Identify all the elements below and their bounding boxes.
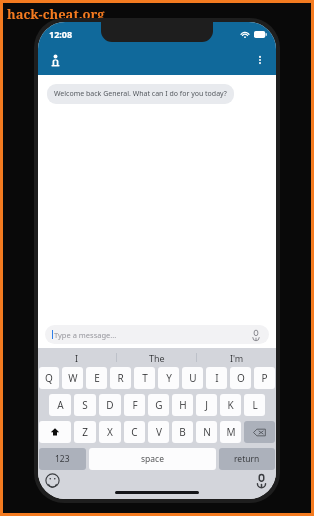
- button[interactable]: D: [99, 394, 121, 416]
- staticText: 123: [55, 453, 70, 465]
- button[interactable]: P: [254, 367, 275, 389]
- staticText: S: [82, 398, 88, 412]
- button[interactable]: Shift: [39, 421, 71, 443]
- staticText: R: [117, 371, 124, 385]
- staticText: Y: [166, 371, 172, 385]
- button[interactable]: S: [74, 394, 96, 416]
- button[interactable]: X: [99, 421, 121, 443]
- staticText: H: [179, 398, 187, 412]
- button[interactable]: Type a message...: [45, 325, 269, 344]
- staticText: The: [149, 352, 165, 364]
- button[interactable]: Voice input: [250, 329, 262, 341]
- staticText: I'm: [230, 352, 244, 364]
- button[interactable]: H: [172, 394, 193, 416]
- staticText: T: [142, 371, 148, 385]
- button[interactable]: Assistant home: [44, 49, 66, 71]
- staticText: I: [75, 352, 79, 364]
- button[interactable]: O: [230, 367, 251, 389]
- staticText: return: [234, 453, 260, 465]
- button[interactable]: Backspace: [244, 421, 275, 443]
- button[interactable]: J: [196, 394, 217, 416]
- button[interactable]: E: [86, 367, 107, 389]
- button[interactable]: K: [220, 394, 241, 416]
- staticText: M: [226, 425, 236, 439]
- staticText: hack-cheat.org: [7, 5, 105, 23]
- button[interactable]: Q: [39, 367, 59, 389]
- staticText: U: [189, 371, 197, 385]
- button[interactable]: V: [148, 421, 169, 443]
- staticText: A: [57, 398, 64, 412]
- staticText: C: [131, 425, 138, 439]
- button[interactable]: 123: [39, 448, 86, 470]
- button[interactable]: Y: [158, 367, 179, 389]
- button[interactable]: I'm: [197, 348, 276, 367]
- staticText: B: [179, 425, 186, 439]
- staticText: space: [141, 453, 164, 465]
- button[interactable]: W: [62, 367, 83, 389]
- button[interactable]: More options: [249, 49, 271, 71]
- staticText: Q: [45, 371, 53, 385]
- button[interactable]: Z: [74, 421, 96, 443]
- button[interactable]: return: [219, 448, 275, 470]
- button[interactable]: G: [148, 394, 169, 416]
- staticText: N: [203, 425, 211, 439]
- staticText: 12:08: [49, 28, 73, 40]
- button[interactable]: F: [124, 394, 145, 416]
- staticText: F: [132, 398, 138, 412]
- staticText: V: [156, 425, 162, 439]
- button[interactable]: L: [244, 394, 265, 416]
- button[interactable]: B: [172, 421, 193, 443]
- staticText: I: [215, 371, 219, 385]
- button[interactable]: U: [182, 367, 203, 389]
- button[interactable]: Welcome back General. What can I do for …: [47, 84, 234, 104]
- button[interactable]: Emoji keyboard: [45, 473, 60, 488]
- staticText: Welcome back General. What can I do for …: [54, 89, 227, 99]
- button[interactable]: space: [89, 448, 216, 470]
- button[interactable]: C: [124, 421, 145, 443]
- staticText: X: [107, 425, 113, 439]
- staticText: Type a message...: [54, 330, 250, 340]
- button[interactable]: M: [220, 421, 241, 443]
- staticText: G: [155, 398, 163, 412]
- button[interactable]: R: [110, 367, 131, 389]
- button[interactable]: Dictation: [254, 473, 269, 488]
- staticText: L: [252, 398, 258, 412]
- button[interactable]: I: [206, 367, 227, 389]
- button[interactable]: The: [117, 348, 196, 367]
- staticText: W: [68, 371, 78, 385]
- button[interactable]: I: [38, 348, 116, 367]
- staticText: D: [106, 398, 114, 412]
- staticText: Z: [82, 425, 88, 439]
- staticText: O: [237, 371, 245, 385]
- button[interactable]: T: [134, 367, 155, 389]
- button[interactable]: A: [49, 394, 71, 416]
- staticText: K: [227, 398, 234, 412]
- staticText: E: [94, 371, 100, 385]
- staticText: J: [205, 398, 208, 412]
- staticText: P: [261, 371, 268, 385]
- button[interactable]: N: [196, 421, 217, 443]
